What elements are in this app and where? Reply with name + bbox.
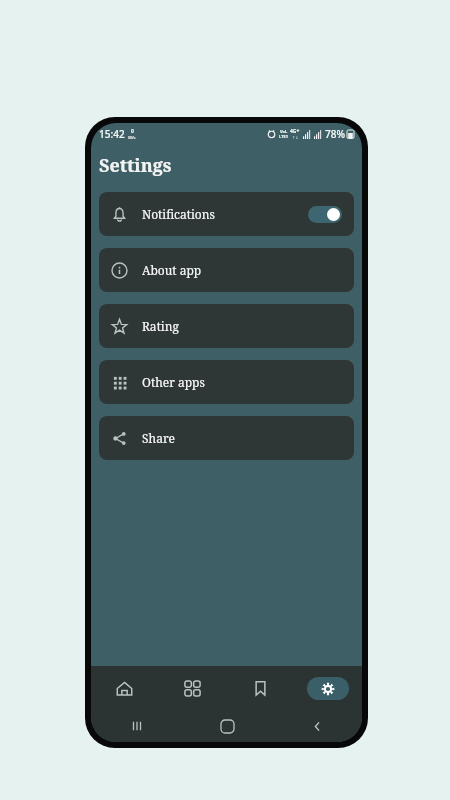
staticText: VoL	[280, 129, 288, 134]
staticText: KB/s	[128, 135, 136, 140]
staticText: Notifications	[142, 206, 215, 222]
staticText: 0	[131, 128, 134, 135]
staticText: LTE1	[279, 134, 288, 139]
button[interactable]: Other apps	[99, 360, 354, 404]
button[interactable]: About app	[99, 248, 354, 292]
staticText: Other apps	[142, 374, 205, 390]
staticText: Rating	[142, 318, 179, 334]
button[interactable]: Toggle notifications	[308, 206, 342, 223]
staticText: 15:42	[99, 127, 125, 141]
staticText: Settings	[99, 153, 172, 178]
button[interactable]: Share	[99, 416, 354, 460]
staticText: Share	[142, 430, 175, 446]
staticText: About app	[142, 262, 202, 278]
button[interactable]: Bookmarks	[226, 666, 294, 710]
button[interactable]: Notifications	[99, 192, 354, 236]
button[interactable]: Settings	[307, 677, 349, 700]
staticText: ↑↓	[292, 135, 299, 140]
staticText: 78%	[325, 127, 345, 141]
button[interactable]: Rating	[99, 304, 354, 348]
staticText: 4G+	[290, 128, 300, 135]
button[interactable]: Apps	[158, 666, 226, 710]
button[interactable]: Home	[91, 666, 158, 710]
